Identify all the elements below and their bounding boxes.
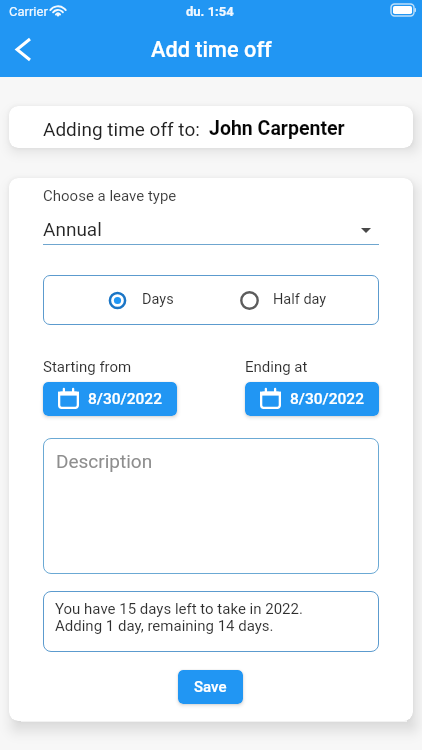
staticText: Annual	[43, 218, 102, 240]
staticText: Choose a leave type	[43, 187, 177, 205]
button[interactable]: Choose a leave type	[43, 214, 379, 246]
button[interactable]: Description	[43, 438, 379, 574]
staticText: Adding 1 day, remaining 14 days.	[55, 617, 274, 635]
staticText: du. 1:54	[186, 4, 234, 19]
staticText: Adding time off to:	[43, 118, 205, 140]
staticText: Ending at	[245, 358, 308, 376]
staticText: Description	[56, 450, 153, 472]
button[interactable]: Back	[0, 27, 46, 71]
staticText: Save	[194, 678, 227, 696]
staticText: 8/30/2022	[88, 390, 162, 408]
staticText: Add time off	[151, 37, 272, 62]
button[interactable]	[103, 275, 177, 325]
staticText: Half day	[273, 291, 327, 308]
button[interactable]: 8/30/2022	[245, 382, 379, 416]
button[interactable]: Save	[178, 670, 243, 704]
staticText: 8/30/2022	[290, 390, 364, 408]
staticText: Days	[142, 291, 174, 308]
staticText: John Carpenter	[209, 117, 345, 140]
button[interactable]: 8/30/2022	[43, 382, 177, 416]
staticText: Starting from	[43, 358, 132, 376]
button[interactable]	[235, 275, 337, 325]
staticText: Carrier	[9, 4, 48, 19]
staticText: You have 15 days left to take in 2022.	[55, 600, 303, 618]
